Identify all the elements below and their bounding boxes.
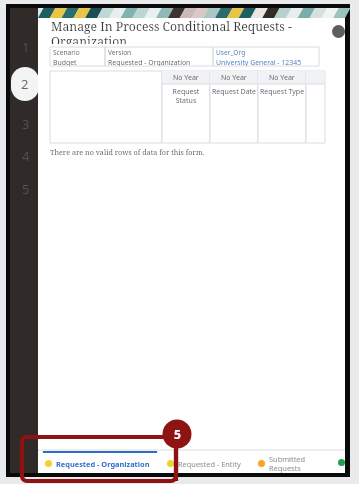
- staticText: Scenario: [53, 48, 80, 57]
- staticText: 5: [22, 180, 30, 198]
- button[interactable]: User_Org: [213, 47, 319, 66]
- staticText: User_Org: [216, 48, 246, 57]
- button[interactable]: Scenario: [50, 47, 105, 66]
- button[interactable]: Submitted Requests: [251, 451, 338, 473]
- staticText: 4: [22, 147, 30, 165]
- staticText: 1: [22, 38, 30, 56]
- staticText: 3: [22, 115, 30, 133]
- button[interactable]: No Year: [258, 71, 306, 143]
- button[interactable]: Requested - Organization: [38, 451, 160, 473]
- button[interactable]: No Year: [162, 71, 210, 143]
- button[interactable]: Requested - Entity: [160, 451, 251, 473]
- button[interactable]: 3: [18, 115, 34, 133]
- staticText: Budget: [53, 58, 77, 66]
- button[interactable]: Version: [105, 47, 213, 66]
- staticText: Manage In Process Conditional Requests -…: [51, 18, 332, 44]
- staticText: No Year: [221, 73, 247, 83]
- button[interactable]: 4: [18, 147, 34, 165]
- staticText: Requested - Entity: [178, 459, 241, 469]
- button[interactable]: 1: [18, 38, 34, 56]
- staticText: Requested - Organization: [108, 58, 191, 66]
- staticText: Submitted Requests: [269, 454, 338, 473]
- button[interactable]: No Year: [210, 71, 258, 143]
- staticText: Requested - Organization: [56, 459, 150, 469]
- staticText: Request Status: [162, 87, 210, 105]
- staticText: There are no valid rows of data for this…: [50, 147, 205, 157]
- staticText: Request Type: [258, 87, 306, 97]
- staticText: No Year: [173, 73, 199, 83]
- button[interactable]: [50, 71, 162, 143]
- staticText: 2: [21, 75, 29, 93]
- button[interactable]: Actions: [332, 25, 345, 38]
- button[interactable]: 5: [18, 180, 34, 198]
- button[interactable]: More tabs: [338, 451, 345, 473]
- staticText: Request Date: [210, 87, 258, 97]
- staticText: Version: [108, 48, 132, 57]
- button[interactable]: 2: [11, 67, 39, 101]
- staticText: No Year: [269, 73, 295, 83]
- staticText: University General - 12345: [216, 58, 302, 66]
- button[interactable]: [306, 71, 325, 143]
- staticText: 5: [174, 426, 181, 442]
